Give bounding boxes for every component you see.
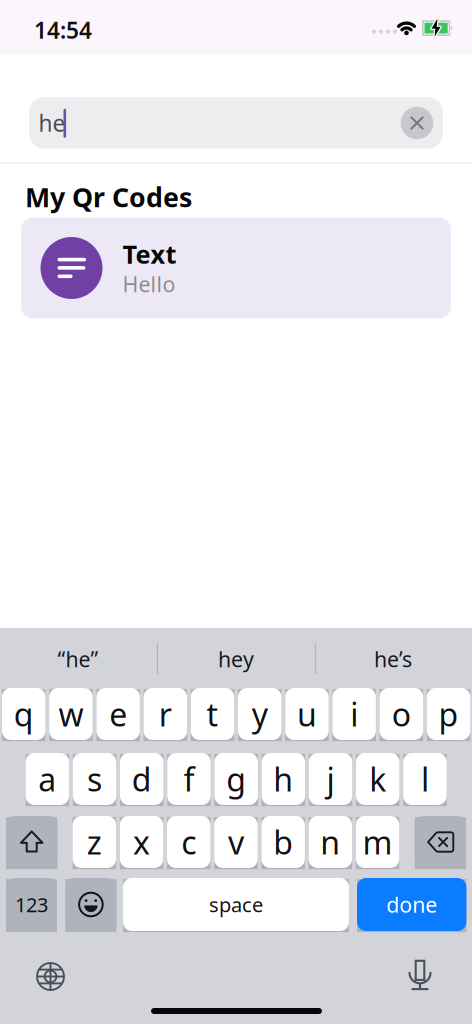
button[interactable]: 123 bbox=[6, 878, 57, 931]
button[interactable]: a bbox=[26, 753, 69, 805]
staticText: j bbox=[327, 758, 335, 800]
button[interactable]: c bbox=[167, 816, 210, 868]
staticText: g bbox=[226, 758, 246, 800]
button[interactable]: Delete bbox=[415, 816, 466, 868]
button[interactable]: n bbox=[309, 816, 352, 868]
button[interactable]: Text bbox=[21, 217, 451, 318]
staticText: t bbox=[207, 693, 219, 735]
staticText: space bbox=[209, 891, 263, 918]
staticText: Hello bbox=[122, 270, 175, 298]
button[interactable]: Shift bbox=[6, 816, 57, 868]
staticText: he’s bbox=[374, 645, 412, 673]
button[interactable]: k bbox=[356, 753, 399, 805]
staticText: v bbox=[228, 821, 244, 863]
button[interactable]: “he” bbox=[8, 637, 148, 681]
staticText: x bbox=[133, 821, 150, 863]
button[interactable]: he’s bbox=[323, 637, 463, 681]
button[interactable]: e bbox=[96, 688, 140, 740]
button[interactable]: j bbox=[309, 753, 352, 805]
staticText: u bbox=[297, 693, 317, 735]
button[interactable]: y bbox=[238, 688, 281, 740]
button[interactable]: d bbox=[120, 753, 163, 805]
staticText: z bbox=[87, 821, 102, 863]
staticText: k bbox=[369, 758, 386, 800]
button[interactable]: v bbox=[214, 816, 258, 868]
button[interactable]: q bbox=[2, 688, 45, 740]
button[interactable]: Emoji bbox=[65, 878, 116, 931]
staticText: e bbox=[109, 693, 127, 735]
staticText: o bbox=[392, 693, 411, 735]
button[interactable]: i bbox=[332, 688, 376, 740]
staticText: l bbox=[421, 758, 429, 800]
staticText: h bbox=[273, 758, 293, 800]
button[interactable]: s bbox=[73, 753, 116, 805]
button[interactable]: t bbox=[191, 688, 234, 740]
button[interactable]: Dictate bbox=[405, 957, 435, 992]
staticText: c bbox=[181, 821, 196, 863]
button[interactable]: f bbox=[167, 753, 211, 805]
staticText: “he” bbox=[57, 645, 98, 673]
button[interactable]: b bbox=[261, 816, 305, 868]
staticText: f bbox=[183, 758, 194, 800]
button[interactable]: g bbox=[214, 753, 258, 805]
staticText: n bbox=[320, 821, 340, 863]
staticText: hey bbox=[218, 645, 254, 673]
staticText: 14:54 bbox=[34, 15, 92, 45]
button[interactable]: p bbox=[427, 688, 470, 740]
staticText: w bbox=[58, 693, 83, 735]
button[interactable]: m bbox=[356, 816, 399, 868]
button[interactable]: w bbox=[49, 688, 93, 740]
button[interactable]: done bbox=[357, 878, 466, 931]
staticText: q bbox=[14, 693, 34, 735]
button[interactable]: l bbox=[403, 753, 447, 805]
staticText: s bbox=[87, 758, 102, 800]
staticText: Text bbox=[122, 237, 176, 271]
staticText: i bbox=[350, 693, 358, 735]
staticText: m bbox=[363, 821, 393, 863]
staticText: he bbox=[38, 108, 65, 138]
staticText: p bbox=[439, 693, 459, 735]
button[interactable]: space bbox=[123, 878, 349, 931]
button[interactable]: Next keyboard bbox=[34, 960, 67, 993]
button[interactable]: z bbox=[73, 816, 116, 868]
button[interactable]: x bbox=[120, 816, 163, 868]
button[interactable]: hey bbox=[166, 637, 306, 681]
staticText: b bbox=[273, 821, 293, 863]
staticText: d bbox=[132, 758, 152, 800]
staticText: r bbox=[159, 693, 172, 735]
button[interactable]: u bbox=[285, 688, 329, 740]
staticText: y bbox=[252, 693, 268, 735]
staticText: My Qr Codes bbox=[25, 179, 192, 215]
staticText: 123 bbox=[15, 891, 48, 918]
button[interactable]: o bbox=[380, 688, 423, 740]
button[interactable]: r bbox=[144, 688, 187, 740]
staticText: a bbox=[38, 758, 56, 800]
staticText: done bbox=[386, 890, 437, 919]
button[interactable]: Clear text bbox=[401, 107, 433, 139]
button[interactable]: h bbox=[262, 753, 305, 805]
